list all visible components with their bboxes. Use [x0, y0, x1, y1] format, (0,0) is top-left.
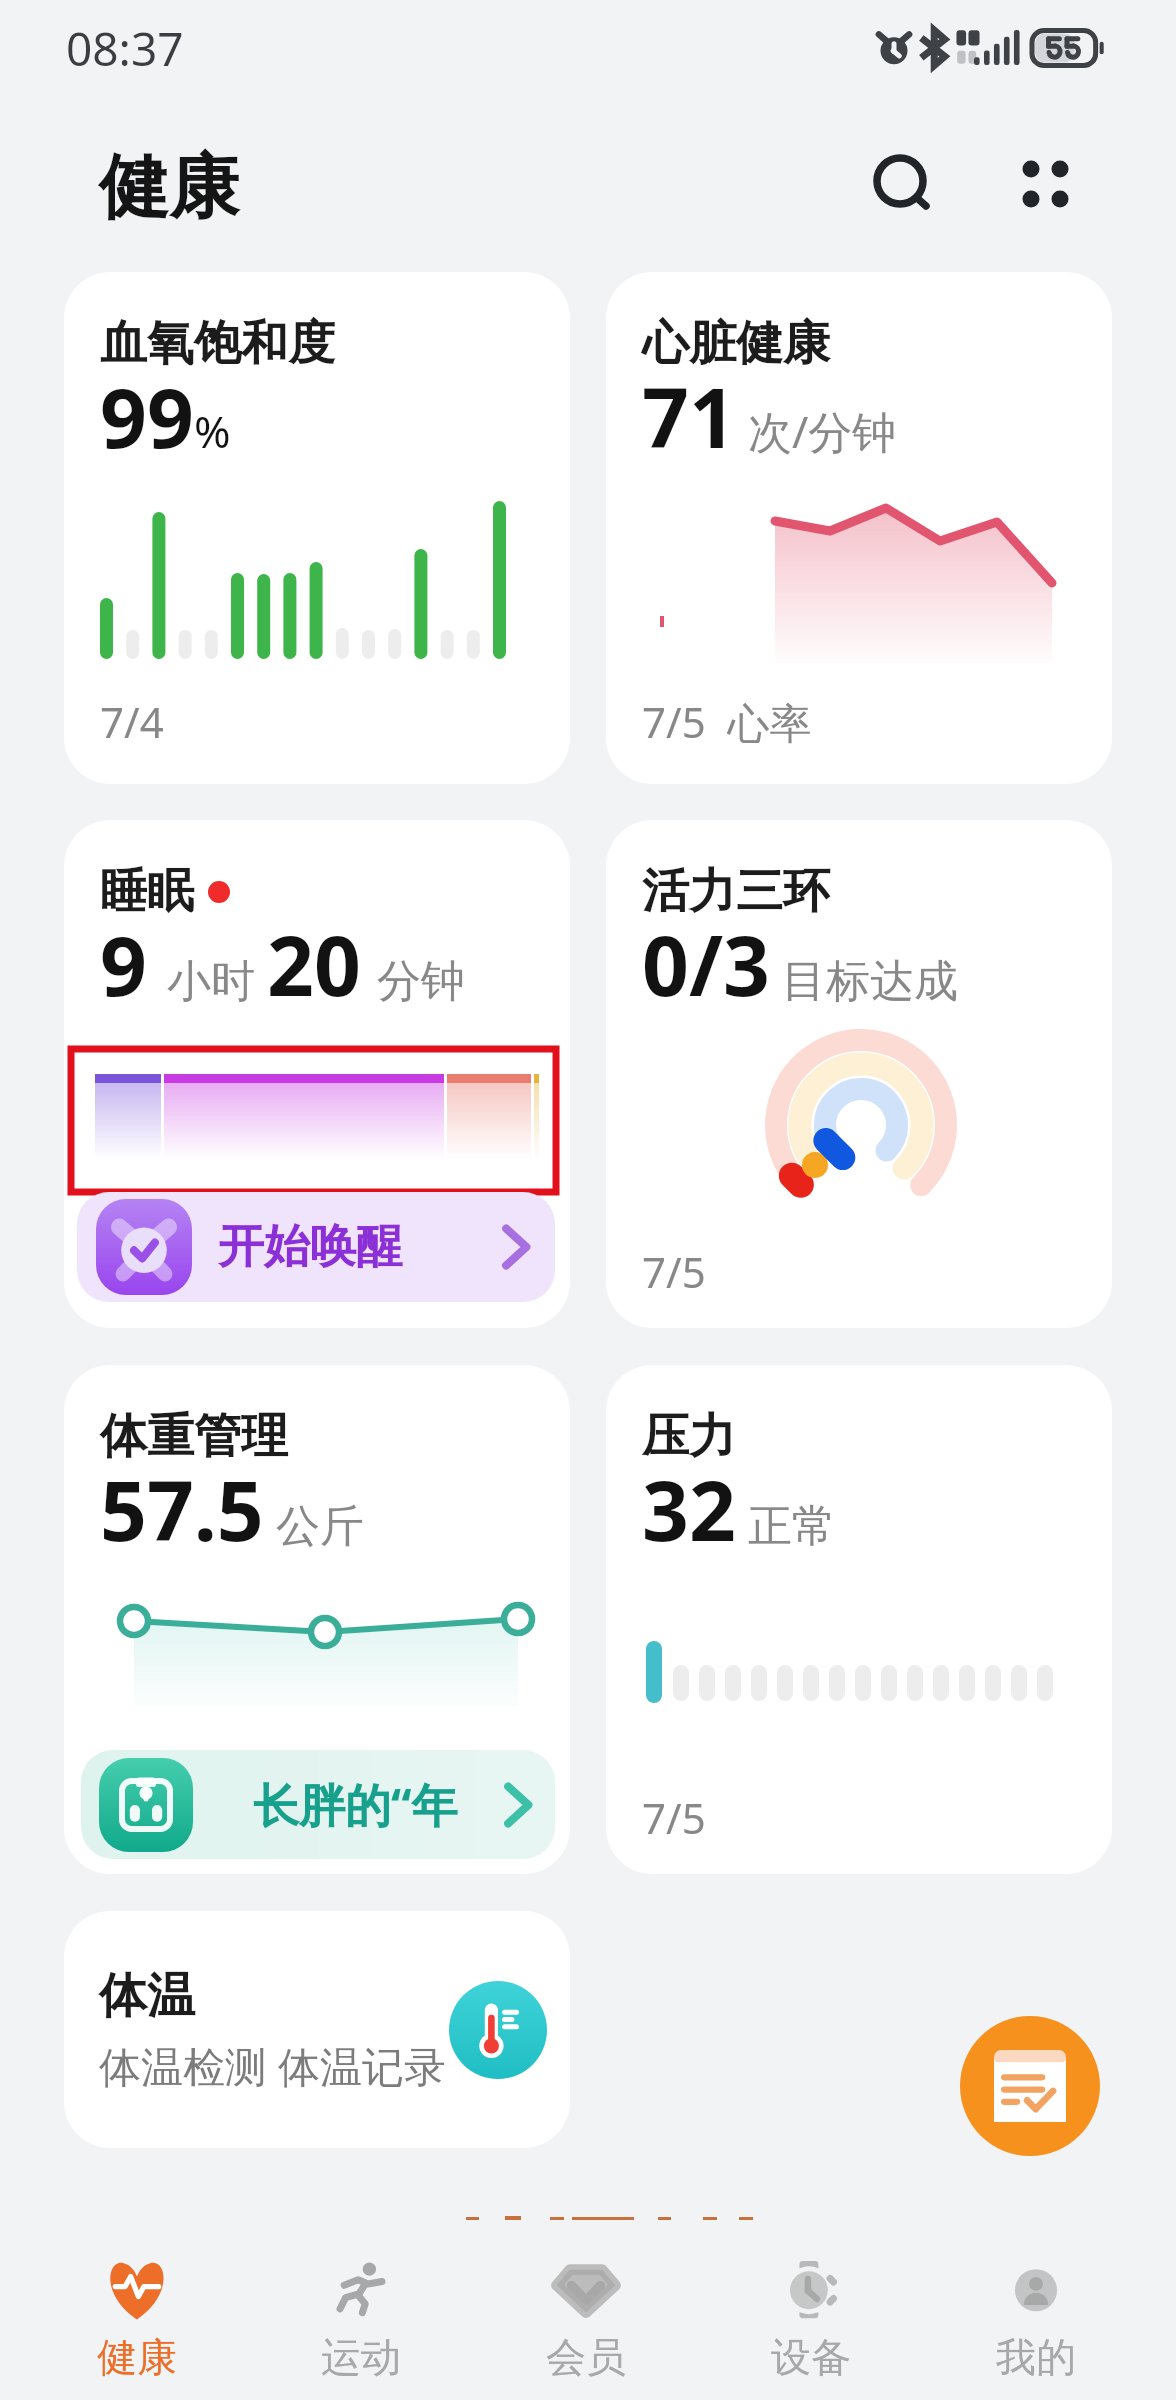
button[interactable]: 体重管理	[64, 1365, 570, 1874]
staticText: 32	[642, 1453, 736, 1565]
staticText: 压力	[642, 1407, 736, 1466]
button[interactable]: 会员	[473, 2204, 698, 2400]
staticText: 运动	[321, 2332, 401, 2382]
staticText: 7/5	[642, 1243, 706, 1300]
button[interactable]: 血氧饱和度	[64, 272, 570, 784]
staticText: 次/分钟	[748, 401, 897, 461]
button[interactable]: 睡眠	[64, 820, 570, 1328]
staticText: 心脏健康	[642, 314, 830, 373]
button[interactable]: 我的	[923, 2204, 1148, 2400]
staticText: 目标达成	[782, 954, 958, 1009]
staticText: 活力三环	[642, 862, 830, 921]
staticText: 公斤	[276, 1499, 364, 1554]
staticText: 会员	[546, 2332, 626, 2382]
staticText: 长胖的“年	[253, 1773, 458, 1836]
staticText: 57.5	[100, 1453, 264, 1565]
button[interactable]: 活力三环	[606, 820, 1112, 1328]
staticText: 20	[267, 908, 361, 1020]
staticText: 体重管理	[100, 1407, 288, 1466]
button[interactable]: Add health record	[960, 2016, 1100, 2156]
button[interactable]: 长胖的“年	[81, 1750, 555, 1859]
staticText: 体温检测 体温记录	[99, 2037, 446, 2094]
staticText: 小时	[167, 954, 255, 1009]
staticText: 7/5	[642, 1789, 706, 1846]
button[interactable]: 心脏健康	[606, 272, 1112, 784]
button[interactable]: 设备	[698, 2204, 923, 2400]
staticText: 08:37	[66, 17, 184, 80]
staticText: 健康	[97, 2332, 177, 2382]
button[interactable]: 健康	[25, 2204, 249, 2400]
button[interactable]: 运动	[249, 2204, 473, 2400]
staticText: 体温	[99, 1966, 195, 2026]
button[interactable]: 体温	[64, 1911, 570, 2148]
staticText: 健康	[99, 144, 239, 232]
button[interactable]: 开始唤醒	[77, 1192, 555, 1302]
staticText: 我的	[996, 2332, 1076, 2382]
staticText: 7/4	[100, 693, 164, 750]
staticText: 0/3	[642, 908, 770, 1020]
staticText: 分钟	[377, 954, 465, 1009]
button[interactable]: 压力	[606, 1365, 1112, 1874]
staticText: 正常	[748, 1499, 836, 1554]
button[interactable]: 点击添加卡片	[450, 2212, 726, 2222]
staticText: 9	[100, 908, 147, 1020]
staticText: 开始唤醒	[218, 1218, 402, 1276]
staticText: 血氧饱和度	[100, 314, 335, 373]
staticText: %	[194, 401, 231, 461]
staticText: 99	[100, 360, 194, 472]
button[interactable]: More options	[992, 128, 1106, 242]
staticText: 71	[642, 360, 736, 472]
staticText: 7/5 心率	[642, 693, 812, 750]
staticText: 睡眠	[100, 862, 194, 921]
button[interactable]: Search	[847, 128, 961, 242]
staticText: 设备	[771, 2332, 851, 2382]
